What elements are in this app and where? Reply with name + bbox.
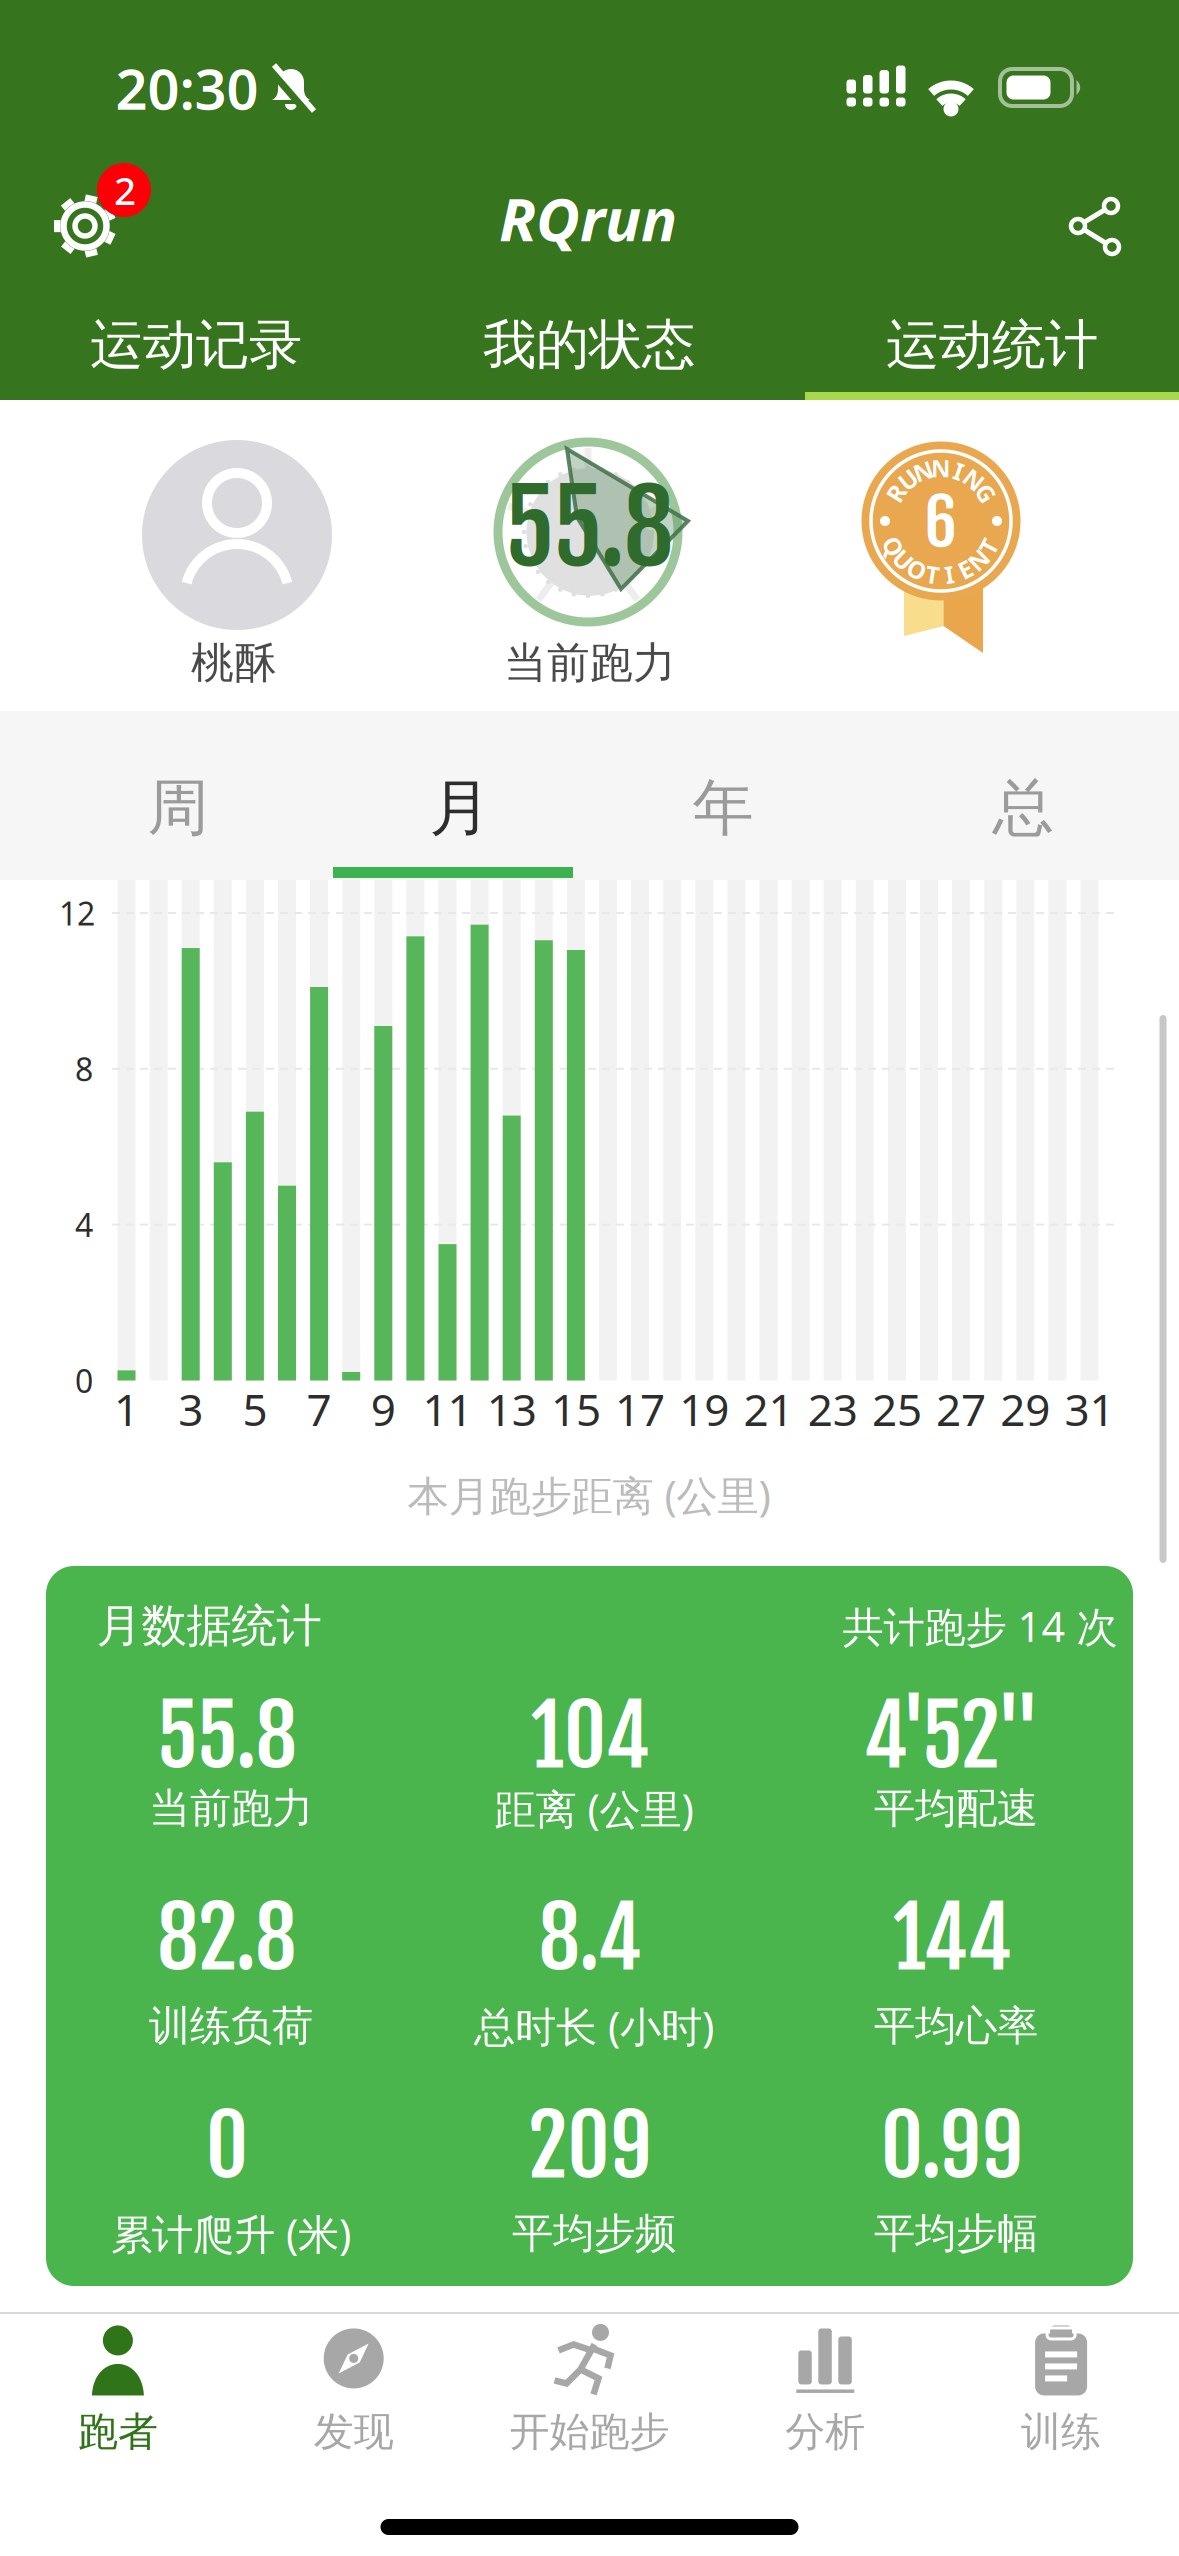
staticText: I: [954, 455, 963, 487]
staticText: G: [977, 477, 994, 509]
staticText: 当前跑力: [504, 637, 676, 689]
staticText: 分析: [785, 2407, 865, 2456]
button[interactable]: 月: [345, 753, 575, 863]
staticText: 0: [75, 1359, 93, 1402]
staticText: 开始跑步: [509, 2407, 669, 2456]
staticText: 209: [528, 2094, 652, 2198]
staticText: 2: [114, 164, 136, 216]
staticText: 共计跑步 14 次: [842, 1599, 1117, 1653]
staticText: 104: [530, 1684, 649, 1788]
staticText: N: [964, 464, 984, 496]
staticText: 17: [615, 1380, 665, 1438]
staticText: 4: [75, 1203, 93, 1246]
staticText: 跑者: [78, 2407, 158, 2456]
staticText: N: [931, 452, 951, 484]
staticText: 7: [307, 1380, 332, 1438]
staticText: 4'52": [863, 1684, 1040, 1788]
staticText: 运动记录: [90, 312, 302, 378]
button[interactable]: [1050, 181, 1140, 271]
staticText: 平均配速: [874, 1783, 1038, 1834]
staticText: 5: [242, 1380, 267, 1438]
staticText: 82.8: [157, 1886, 297, 1990]
staticText: 平均步频: [512, 2208, 676, 2259]
button[interactable]: 发现: [236, 2310, 472, 2470]
button[interactable]: 总: [908, 753, 1138, 863]
staticText: 我的状态: [483, 312, 695, 378]
staticText: 19: [679, 1380, 729, 1438]
button[interactable]: 年: [608, 753, 838, 863]
staticText: 6: [924, 483, 957, 563]
staticText: T: [926, 558, 940, 590]
staticText: 桃酥: [191, 637, 277, 689]
staticText: U: [899, 464, 917, 496]
button[interactable]: 训练: [943, 2310, 1179, 2470]
staticText: RQrun: [499, 178, 677, 258]
staticText: T: [982, 530, 996, 562]
staticText: E: [959, 553, 972, 585]
staticText: 15: [551, 1380, 601, 1438]
staticText: 0: [205, 2094, 248, 2198]
staticText: I: [945, 558, 954, 590]
staticText: 20:30: [115, 51, 258, 125]
staticText: 25: [872, 1380, 922, 1438]
button[interactable]: 分析: [707, 2310, 943, 2470]
staticText: 29: [1000, 1380, 1050, 1438]
staticText: 平均步幅: [874, 2208, 1038, 2259]
staticText: 当前跑力: [149, 1783, 313, 1834]
staticText: R: [888, 477, 904, 509]
button[interactable]: 跑者: [0, 2310, 236, 2470]
staticText: 8: [75, 1048, 93, 1090]
button[interactable]: 运动统计: [802, 303, 1179, 387]
staticText: 年: [692, 770, 753, 846]
staticText: 累计爬升 (米): [111, 2206, 351, 2261]
staticText: 31: [1064, 1380, 1114, 1438]
staticText: 9: [371, 1380, 396, 1438]
staticText: 训练负荷: [149, 2001, 313, 2051]
staticText: 27: [936, 1380, 986, 1438]
staticText: N: [969, 544, 989, 576]
staticText: 55.8: [156, 1684, 297, 1788]
staticText: 8.4: [538, 1886, 641, 1990]
staticText: O: [907, 553, 926, 585]
staticText: 11: [422, 1380, 472, 1438]
staticText: 平均心率: [874, 2001, 1038, 2051]
button[interactable]: 开始跑步: [472, 2310, 707, 2470]
button[interactable]: 运动记录: [6, 303, 386, 387]
staticText: 23: [808, 1380, 858, 1438]
staticText: 发现: [314, 2407, 394, 2456]
staticText: 运动统计: [886, 312, 1098, 378]
staticText: 总时长 (小时): [474, 1999, 714, 2053]
button[interactable]: 我的状态: [399, 303, 779, 387]
staticText: Q: [884, 530, 903, 562]
staticText: 周: [147, 770, 208, 846]
staticText: 本月跑步距离 (公里): [407, 1468, 770, 1522]
button[interactable]: 周: [63, 753, 293, 863]
button[interactable]: 2: [15, 147, 165, 277]
staticText: 训练: [1021, 2407, 1101, 2456]
staticText: 55.8: [504, 465, 673, 591]
staticText: 0.99: [880, 2094, 1023, 2198]
staticText: 1: [114, 1380, 139, 1438]
staticText: 3: [178, 1380, 203, 1438]
staticText: 144: [892, 1886, 1011, 1990]
staticText: 月: [429, 770, 490, 846]
staticText: N: [913, 455, 933, 487]
staticText: 12: [59, 892, 95, 934]
staticText: 总: [992, 770, 1053, 846]
staticText: U: [894, 544, 912, 576]
staticText: 21: [743, 1380, 793, 1438]
staticText: 距离 (公里): [494, 1781, 693, 1836]
staticText: 月数据统计: [96, 1598, 321, 1654]
staticText: 13: [487, 1380, 537, 1438]
